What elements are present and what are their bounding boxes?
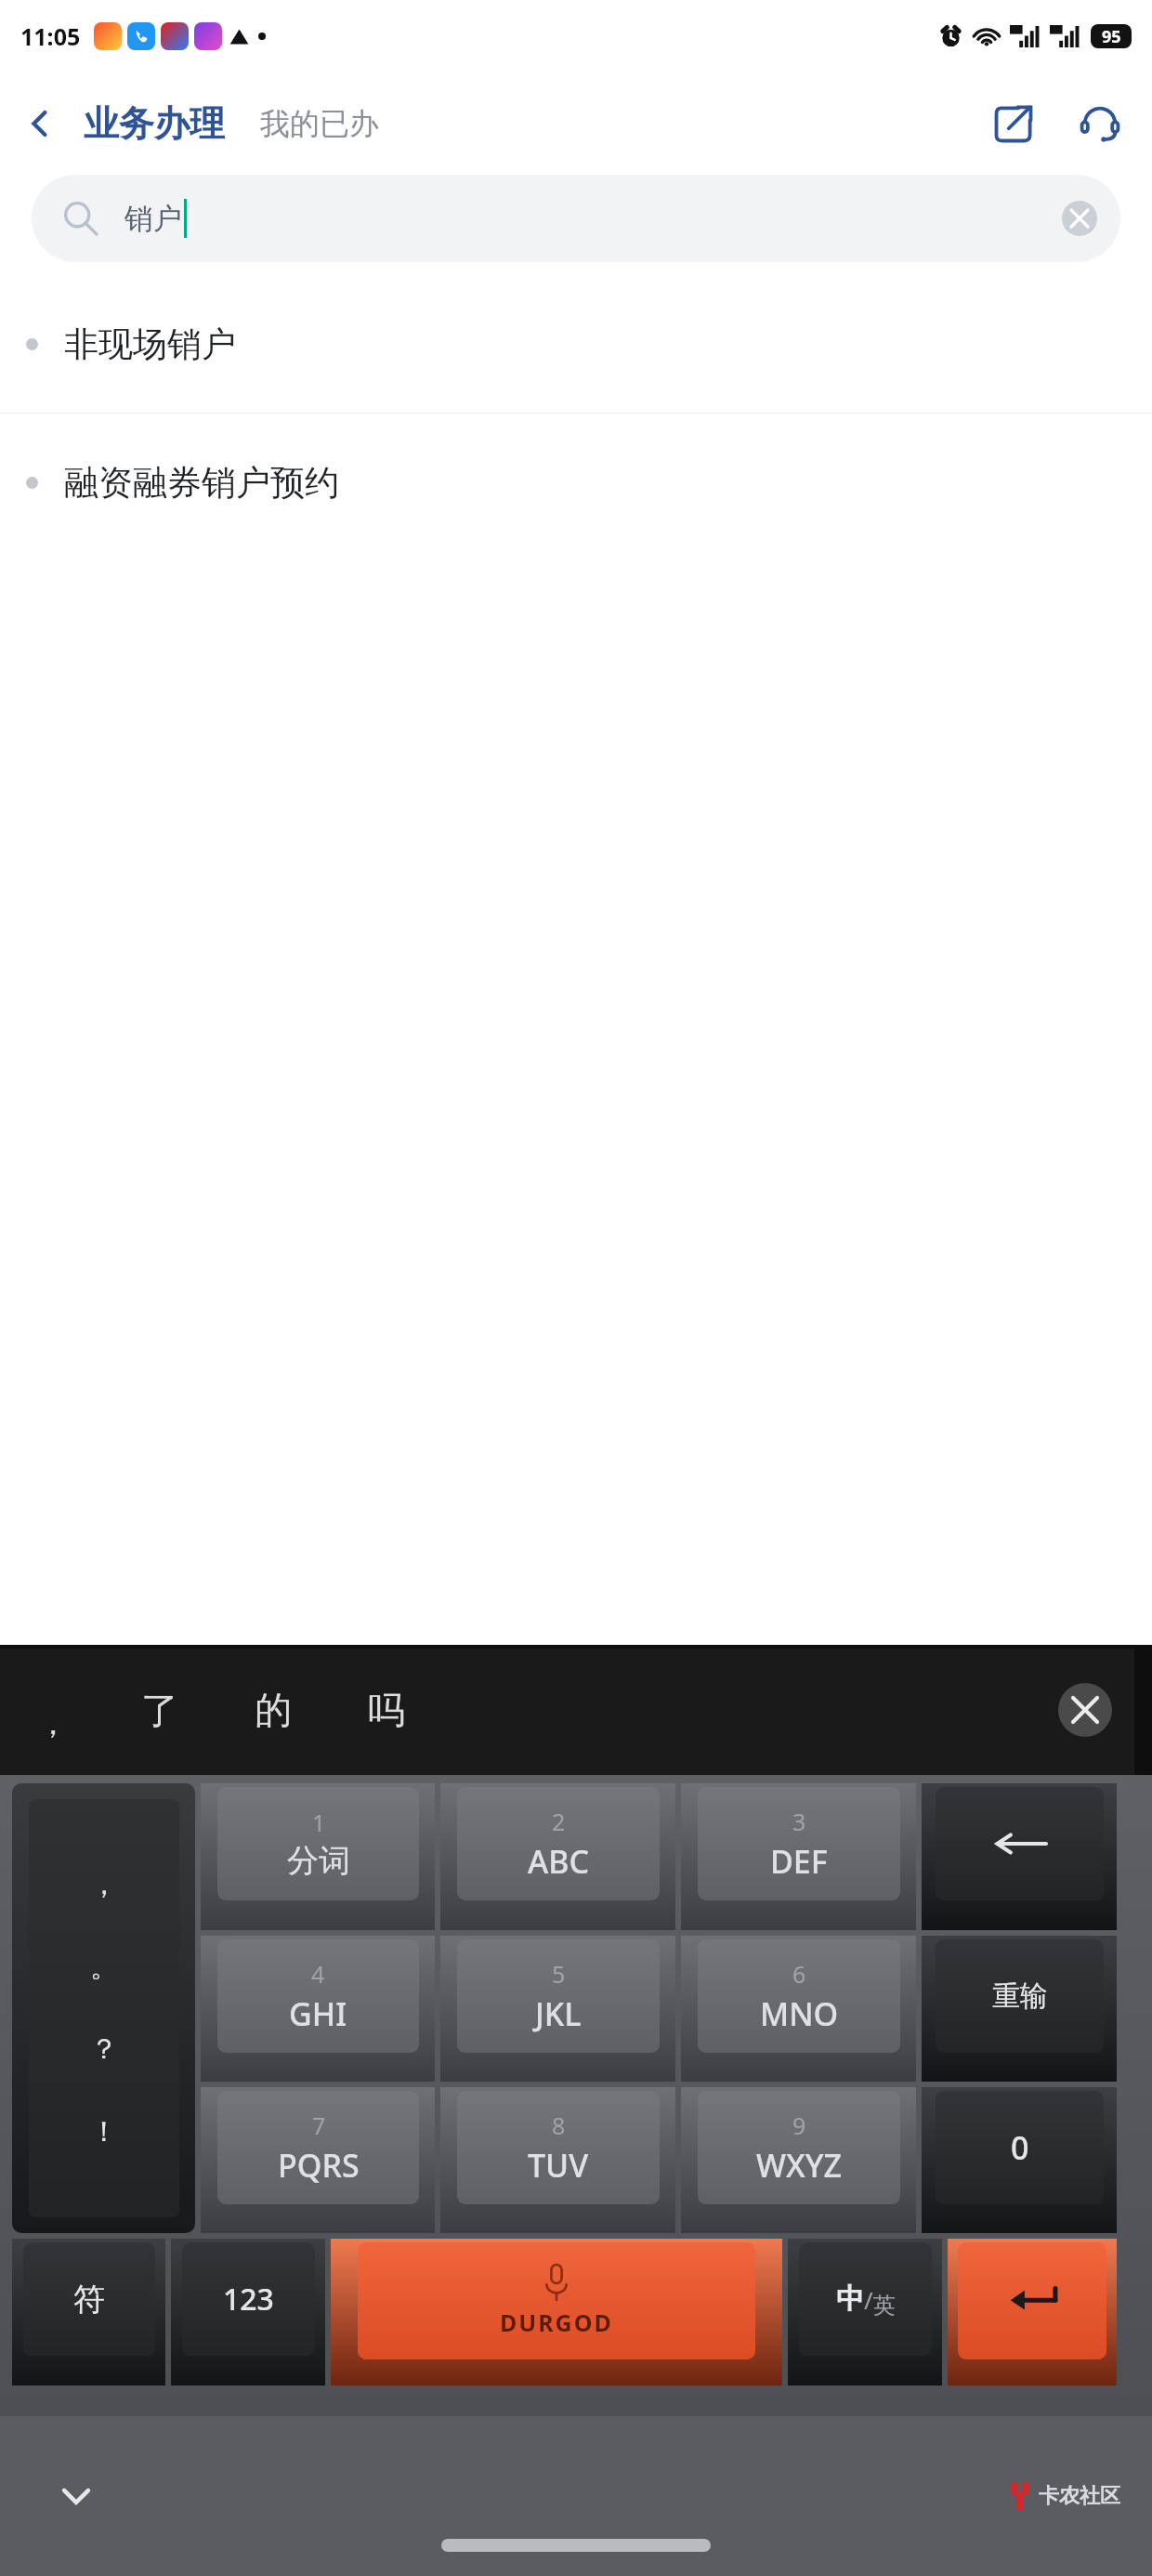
staticText: 吗: [368, 1687, 405, 1733]
button[interactable]: 8: [440, 2087, 675, 2233]
staticText: 销户: [124, 201, 182, 237]
other: 空格: [500, 2265, 613, 2338]
button[interactable]: 清空: [1048, 187, 1111, 250]
button[interactable]: 业务办理: [80, 101, 229, 146]
button[interactable]: 6: [681, 1936, 916, 2082]
staticText: 符: [73, 2280, 105, 2320]
staticText: 英: [873, 2292, 896, 2320]
staticText: 3: [792, 1806, 806, 1837]
other: 回车: [1005, 2282, 1059, 2320]
button[interactable]: 收起键盘: [39, 2459, 113, 2533]
staticText: 了: [141, 1687, 178, 1733]
staticText: 8: [552, 2109, 566, 2141]
staticText: MNO: [760, 1992, 839, 2035]
button[interactable]: 返回: [0, 72, 80, 175]
staticText: 1: [312, 1807, 326, 1838]
staticText: 业务办理: [84, 101, 225, 146]
button[interactable]: 123: [171, 2239, 325, 2385]
button[interactable]: 重输: [922, 1936, 1117, 2082]
button[interactable]: 退格: [922, 1783, 1117, 1930]
staticText: 123: [223, 2279, 274, 2320]
staticText: ABC: [528, 1840, 590, 1883]
staticText: WXYZ: [756, 2144, 843, 2187]
staticText: 重输: [992, 1978, 1048, 2014]
button[interactable]: 中英切换: [788, 2239, 942, 2385]
staticText: ，: [37, 1703, 69, 1743]
button[interactable]: 分享: [972, 82, 1055, 165]
staticText: 我的已办: [260, 105, 379, 142]
button[interactable]: 符: [12, 2239, 165, 2385]
button[interactable]: 我的已办: [256, 105, 383, 142]
staticText: 4: [311, 1958, 325, 1990]
staticText: 的: [255, 1687, 292, 1733]
staticText: 2: [552, 1806, 566, 1837]
button[interactable]: 2: [440, 1783, 675, 1930]
button[interactable]: 0: [922, 2087, 1117, 2233]
button[interactable]: 吗: [362, 1679, 411, 1741]
staticText: GHI: [289, 1992, 347, 2035]
button[interactable]: 了: [136, 1679, 184, 1741]
button[interactable]: 回车: [948, 2239, 1117, 2385]
button[interactable]: 9: [681, 2087, 916, 2233]
button[interactable]: ，: [12, 1783, 195, 2233]
staticText: 11:05: [20, 20, 81, 52]
button[interactable]: 销户: [32, 175, 1120, 262]
button[interactable]: 空格: [331, 2239, 782, 2385]
button[interactable]: 7: [201, 2087, 435, 2233]
button[interactable]: 非现场销户: [0, 275, 1152, 414]
staticText: ！: [90, 2114, 118, 2149]
staticText: 6: [792, 1958, 806, 1990]
staticText: DURGOD: [500, 2307, 613, 2338]
staticText: TUV: [528, 2144, 589, 2187]
staticText: 5: [552, 1958, 566, 1990]
button[interactable]: 4: [201, 1936, 435, 2082]
button[interactable]: 收起候选: [1050, 1675, 1120, 1745]
button[interactable]: 1: [201, 1783, 435, 1930]
button[interactable]: 客服: [1055, 79, 1145, 168]
other: 退格: [994, 1828, 1046, 1860]
staticText: 。: [90, 1950, 118, 1985]
staticText: 9: [792, 2109, 806, 2141]
staticText: PQRS: [278, 2144, 360, 2187]
staticText: 融资融券销户预约: [64, 461, 339, 505]
staticText: ，: [90, 1867, 118, 1902]
staticText: JKL: [535, 1992, 582, 2035]
staticText: 7: [312, 2109, 326, 2141]
staticText: /: [864, 2283, 873, 2316]
staticText: 卡农社区: [1039, 2483, 1120, 2509]
staticText: 95: [1102, 25, 1121, 48]
button[interactable]: ，: [32, 1683, 74, 1738]
button[interactable]: 的: [249, 1679, 297, 1741]
button[interactable]: 融资融券销户预约: [0, 414, 1152, 551]
button[interactable]: 5: [440, 1936, 675, 2082]
staticText: DEF: [770, 1840, 828, 1883]
staticText: 0: [1011, 2126, 1029, 2169]
staticText: 非现场销户: [64, 322, 236, 366]
staticText: ？: [90, 2031, 118, 2067]
other: 中英切换: [836, 2279, 896, 2320]
button[interactable]: 3: [681, 1783, 916, 1930]
staticText: 分词: [287, 1841, 350, 1881]
staticText: 中: [836, 2281, 864, 2317]
